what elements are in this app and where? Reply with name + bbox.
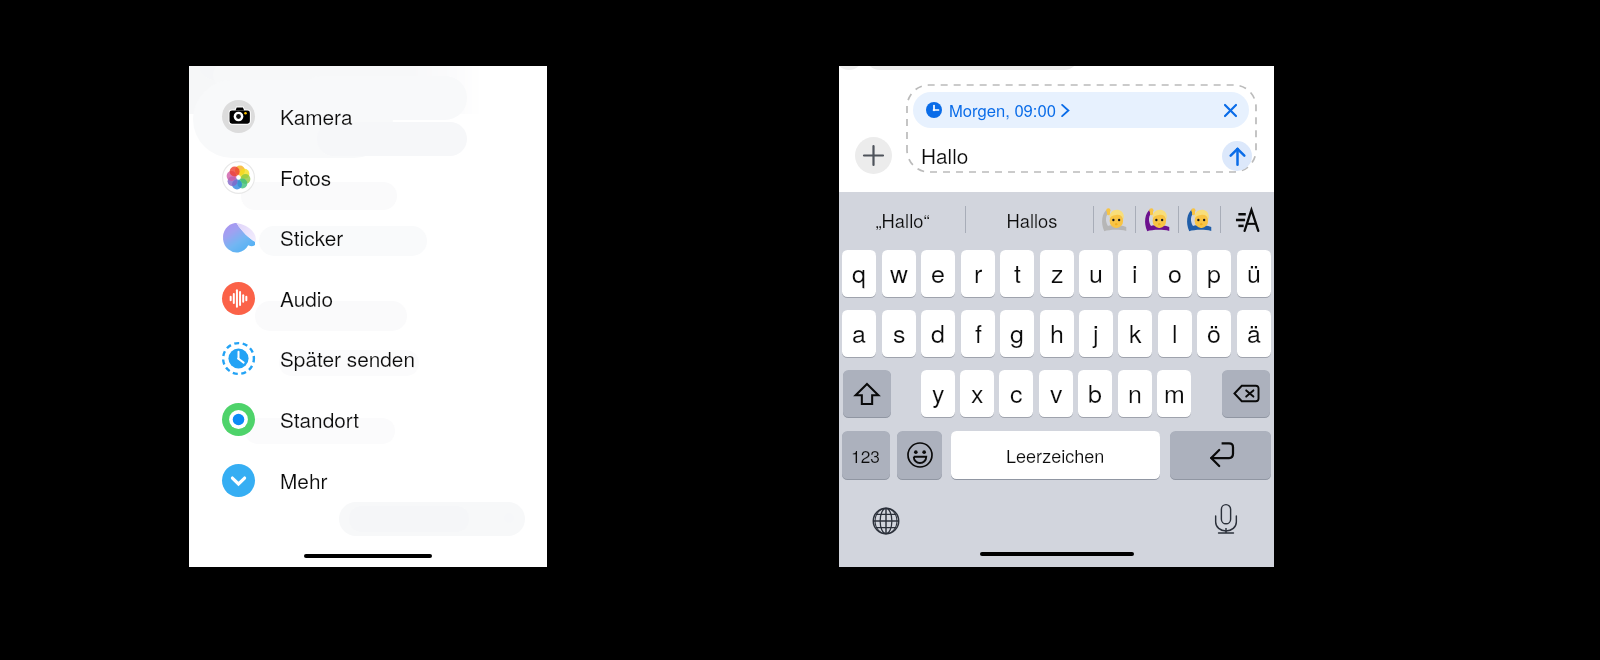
- staticText: Morgen, 09:00: [949, 98, 1056, 122]
- staticText: Hallos: [1006, 207, 1058, 233]
- staticText: e: [931, 254, 945, 290]
- staticText: j: [1093, 314, 1099, 350]
- staticText: l: [1172, 314, 1178, 350]
- staticText: Später senden: [280, 343, 415, 373]
- button[interactable]: Textformatierung: [1221, 198, 1273, 241]
- button[interactable]: c: [999, 370, 1033, 417]
- button[interactable]: ä: [1237, 310, 1271, 357]
- staticText: s: [893, 314, 906, 350]
- button[interactable]: m: [1157, 370, 1191, 417]
- button[interactable]: Anhang hinzufügen: [855, 137, 892, 174]
- button[interactable]: i: [1118, 250, 1152, 297]
- button[interactable]: ö: [1197, 310, 1231, 357]
- button[interactable]: Sticker: [189, 207, 547, 267]
- staticText: Audio: [280, 283, 333, 313]
- staticText: r: [974, 254, 983, 290]
- button[interactable]: v: [1039, 370, 1073, 417]
- staticText: x: [971, 374, 984, 410]
- staticText: z: [1051, 254, 1064, 290]
- staticText: ö: [1207, 314, 1221, 350]
- button[interactable]: q: [842, 250, 876, 297]
- button[interactable]: Emoji-Vorschlag: [1178, 198, 1220, 241]
- staticText: f: [975, 314, 982, 350]
- staticText: v: [1050, 374, 1063, 410]
- staticText: Leerzeichen: [1006, 442, 1105, 468]
- staticText: q: [852, 254, 866, 290]
- button[interactable]: t: [1000, 250, 1034, 297]
- staticText: Standort: [280, 404, 360, 434]
- staticText: Sticker: [280, 222, 344, 252]
- button[interactable]: Kamera: [189, 86, 547, 146]
- button[interactable]: d: [921, 310, 955, 357]
- button[interactable]: Morgen, 09:00: [913, 92, 1249, 128]
- button[interactable]: w: [882, 250, 916, 297]
- button[interactable]: u: [1079, 250, 1113, 297]
- staticText: p: [1207, 254, 1221, 290]
- staticText: u: [1089, 254, 1103, 290]
- staticText: ü: [1247, 254, 1261, 290]
- button[interactable]: Zeitplan entfernen: [1214, 94, 1246, 126]
- button[interactable]: Später senden: [189, 328, 547, 388]
- staticText: n: [1128, 374, 1142, 410]
- staticText: h: [1050, 314, 1064, 350]
- button[interactable]: y: [921, 370, 955, 417]
- button[interactable]: z: [1040, 250, 1074, 297]
- staticText: i: [1132, 254, 1138, 290]
- button[interactable]: s: [882, 310, 916, 357]
- button[interactable]: f: [961, 310, 995, 357]
- button[interactable]: h: [1040, 310, 1074, 357]
- button[interactable]: Diktieren: [1208, 501, 1244, 537]
- button[interactable]: Leerzeichen: [951, 431, 1160, 479]
- button[interactable]: Emoji-Tastatur: [897, 431, 942, 479]
- button[interactable]: Standort: [189, 389, 547, 449]
- button[interactable]: p: [1197, 250, 1231, 297]
- button[interactable]: e: [921, 250, 955, 297]
- staticText: m: [1164, 374, 1185, 410]
- staticText: b: [1088, 374, 1102, 410]
- button[interactable]: Zahlen und Symbole: [842, 431, 890, 479]
- staticText: Fotos: [280, 162, 332, 192]
- staticText: d: [931, 314, 945, 350]
- staticText: w: [890, 254, 909, 290]
- button[interactable]: Hallos: [973, 192, 1091, 247]
- button[interactable]: „Hallo“: [843, 192, 961, 247]
- button[interactable]: Emoji-Vorschlag: [1093, 198, 1135, 241]
- button[interactable]: n: [1118, 370, 1152, 417]
- button[interactable]: ü: [1237, 250, 1271, 297]
- staticText: o: [1168, 254, 1182, 290]
- button[interactable]: Mehr: [189, 450, 547, 510]
- button[interactable]: Umschalttaste: [843, 370, 891, 417]
- button[interactable]: b: [1078, 370, 1112, 417]
- button[interactable]: Senden: [1222, 141, 1252, 171]
- staticText: g: [1010, 314, 1024, 350]
- staticText: ä: [1247, 314, 1261, 350]
- button[interactable]: j: [1079, 310, 1113, 357]
- button[interactable]: Tastatursprache wechseln: [868, 503, 904, 539]
- button[interactable]: r: [961, 250, 995, 297]
- button[interactable]: Emoji-Vorschlag: [1136, 198, 1178, 241]
- button[interactable]: Löschen: [1222, 370, 1270, 417]
- button[interactable]: a: [842, 310, 876, 357]
- staticText: Mehr: [280, 465, 328, 495]
- button[interactable]: Fotos: [189, 147, 547, 207]
- button[interactable]: Eingabetaste: [1170, 431, 1271, 479]
- staticText: Kamera: [280, 101, 353, 131]
- staticText: y: [932, 374, 945, 410]
- button[interactable]: x: [960, 370, 994, 417]
- button[interactable]: g: [1000, 310, 1034, 357]
- staticText: „Hallo“: [875, 207, 930, 233]
- staticText: c: [1010, 374, 1023, 410]
- staticText: Hallo: [921, 140, 969, 170]
- button[interactable]: k: [1118, 310, 1152, 357]
- button[interactable]: Audio: [189, 268, 547, 328]
- button[interactable]: o: [1158, 250, 1192, 297]
- staticText: a: [852, 314, 866, 350]
- staticText: 123: [851, 443, 881, 468]
- button[interactable]: l: [1158, 310, 1192, 357]
- staticText: k: [1129, 314, 1142, 350]
- staticText: t: [1014, 254, 1021, 290]
